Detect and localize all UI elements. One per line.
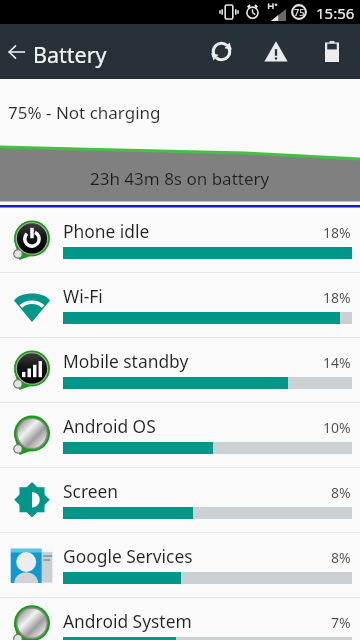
- button[interactable]: Battery saver: [306, 24, 358, 79]
- staticText: Mobile standby: [63, 349, 189, 373]
- staticText: Android OS: [63, 414, 156, 438]
- staticText: Google Services: [63, 544, 193, 568]
- button[interactable]: Google Services: [0, 533, 360, 597]
- button[interactable]: Mobile standby: [0, 338, 360, 402]
- staticText: 75: [294, 6, 305, 18]
- staticText: 7%: [331, 613, 351, 632]
- staticText: 10%: [323, 418, 351, 437]
- staticText: Android System: [63, 609, 192, 633]
- staticText: 75% - Not charging: [8, 101, 161, 124]
- button[interactable]: Android OS: [0, 403, 360, 467]
- button[interactable]: Wi-Fi: [0, 273, 360, 337]
- staticText: 18%: [323, 288, 351, 307]
- staticText: Battery: [33, 40, 107, 69]
- button[interactable]: Refresh: [193, 24, 249, 79]
- staticText: 23h 43m 8s on battery: [90, 167, 270, 190]
- button[interactable]: Screen: [0, 468, 360, 532]
- staticText: 15:56: [316, 3, 355, 23]
- staticText: 14%: [323, 353, 351, 372]
- staticText: Phone idle: [63, 219, 150, 243]
- staticText: Wi-Fi: [63, 284, 103, 308]
- staticText: Screen: [63, 479, 119, 503]
- button[interactable]: Android System: [0, 598, 360, 640]
- staticText: 8%: [331, 483, 351, 502]
- button[interactable]: Battery warning: [250, 24, 302, 79]
- button[interactable]: Phone idle: [0, 208, 360, 272]
- staticText: 8%: [331, 548, 351, 567]
- button[interactable]: Navigate up: [0, 24, 33, 79]
- staticText: 18%: [323, 223, 351, 242]
